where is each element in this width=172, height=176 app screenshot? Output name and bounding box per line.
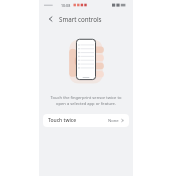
staticText: Touch twice (48, 117, 77, 124)
button[interactable]: Back (44, 12, 57, 25)
staticText: 10:08 (61, 3, 71, 8)
staticText: None (108, 118, 119, 124)
staticText: Touch the fingerprint sensor twice to op… (48, 95, 124, 107)
button[interactable]: Touch twice (43, 114, 129, 127)
staticText: Smart controls (59, 15, 102, 23)
